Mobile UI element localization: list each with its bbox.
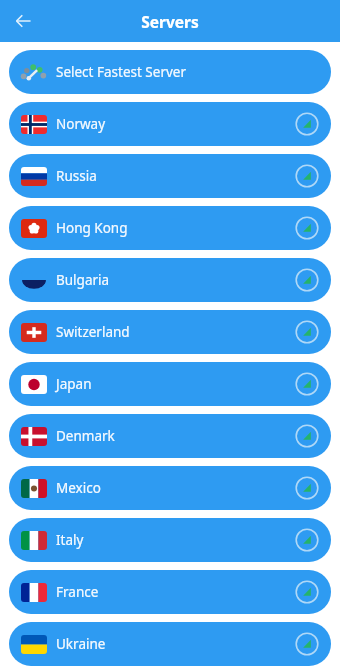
staticText: Servers: [141, 11, 199, 32]
staticText: Denmark: [56, 427, 115, 445]
button[interactable]: France: [9, 570, 331, 614]
staticText: Mexico: [56, 479, 101, 497]
staticText: France: [56, 583, 99, 601]
staticText: Ukraine: [56, 635, 106, 653]
staticText: Hong Kong: [56, 219, 128, 237]
staticText: Select Fastest Server: [56, 63, 187, 81]
button[interactable]: Russia: [9, 154, 331, 198]
button[interactable]: Mexico: [9, 466, 331, 510]
button[interactable]: Bulgaria: [9, 258, 331, 302]
staticText: Italy: [56, 531, 84, 549]
staticText: Japan: [56, 375, 92, 393]
button[interactable]: Japan: [9, 362, 331, 406]
button[interactable]: Denmark: [9, 414, 331, 458]
button[interactable]: Italy: [9, 518, 331, 562]
button[interactable]: Select Fastest Server: [9, 50, 331, 94]
staticText: Norway: [56, 115, 106, 133]
button[interactable]: Ukraine: [9, 622, 331, 666]
button[interactable]: Back: [6, 4, 40, 38]
button[interactable]: Switzerland: [9, 310, 331, 354]
staticText: Bulgaria: [56, 271, 110, 289]
staticText: Russia: [56, 167, 97, 185]
staticText: Switzerland: [56, 323, 130, 341]
button[interactable]: Norway: [9, 102, 331, 146]
button[interactable]: Hong Kong: [9, 206, 331, 250]
